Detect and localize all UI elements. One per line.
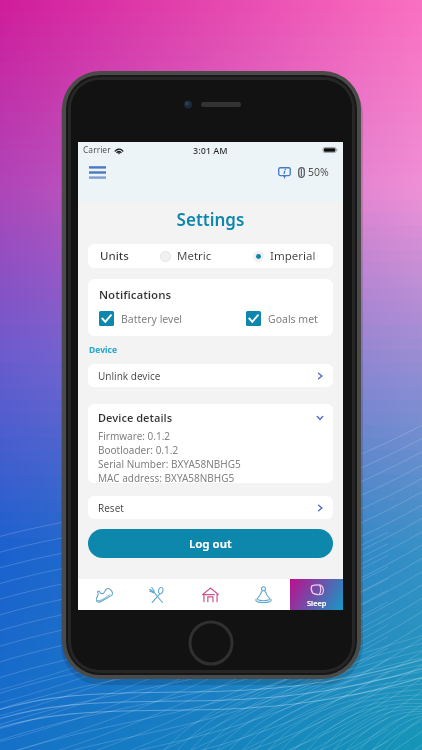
staticText: Device	[89, 344, 117, 356]
staticText: Unlink device	[98, 369, 161, 383]
button[interactable]: Log out	[88, 529, 333, 558]
button[interactable]: Battery level	[99, 311, 183, 326]
staticText: Log out	[189, 536, 232, 552]
staticText: Notifications	[99, 287, 172, 303]
button[interactable]: Info	[276, 165, 292, 180]
button[interactable]: Unlink device	[88, 364, 333, 387]
staticText: Reset	[98, 501, 124, 515]
button[interactable]: Menu	[87, 161, 109, 183]
staticText: Carrier	[83, 144, 111, 156]
staticText: Settings	[78, 208, 343, 231]
staticText: MAC address: BXYA58NBHG5	[98, 471, 235, 483]
button[interactable]: Device details	[98, 410, 324, 425]
staticText: Battery level	[121, 312, 183, 326]
button[interactable]: Home	[184, 579, 237, 610]
staticText: Device details	[98, 410, 173, 425]
staticText: Units	[100, 248, 129, 264]
staticText: Serial Number: BXYA58NBHG5	[98, 457, 241, 471]
staticText: Sleep	[307, 598, 327, 608]
staticText: Imperial	[270, 248, 316, 264]
button[interactable]: Sleep	[290, 579, 343, 610]
button[interactable]: Goals met	[246, 311, 318, 326]
staticText: 3:01 AM	[193, 144, 228, 156]
button[interactable]: Metric	[160, 248, 212, 264]
button[interactable]: Activity	[78, 579, 131, 610]
staticText: 50%	[308, 165, 329, 179]
button[interactable]: Imperial	[253, 248, 316, 264]
button[interactable]: Reset	[88, 496, 333, 519]
staticText: Goals met	[268, 312, 318, 326]
staticText: Firmware: 0.1.2	[98, 429, 171, 443]
staticText: Metric	[177, 248, 212, 264]
button[interactable]: Food	[131, 579, 184, 610]
button[interactable]: Meditate	[237, 579, 290, 610]
staticText: Bootloader: 0.1.2	[98, 443, 179, 457]
